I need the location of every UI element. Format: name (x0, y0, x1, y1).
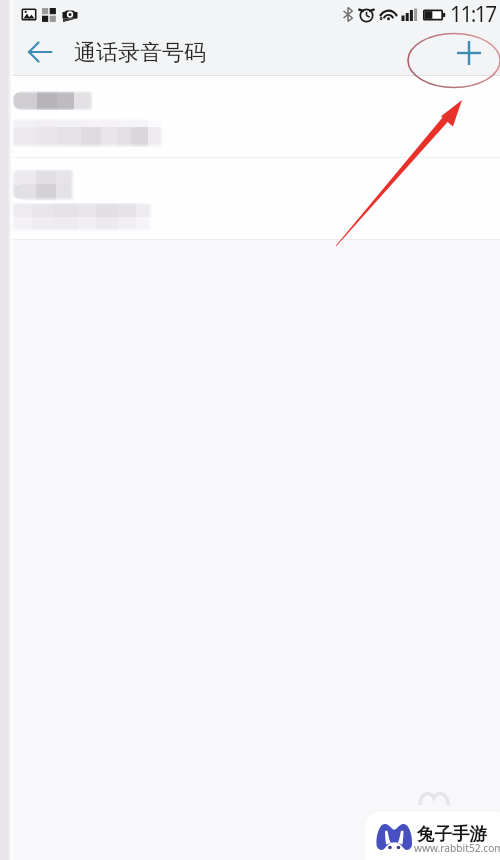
staticText: 兔子手游 (417, 823, 487, 845)
button[interactable] (0, 76, 500, 158)
staticText: 通话录音号码 (74, 39, 206, 67)
button[interactable]: Back (16, 28, 64, 76)
staticText: 11:17 (450, 0, 496, 28)
button[interactable]: Add (445, 29, 493, 77)
button[interactable] (0, 158, 500, 240)
staticText: www.rabbit52.com (414, 841, 500, 855)
